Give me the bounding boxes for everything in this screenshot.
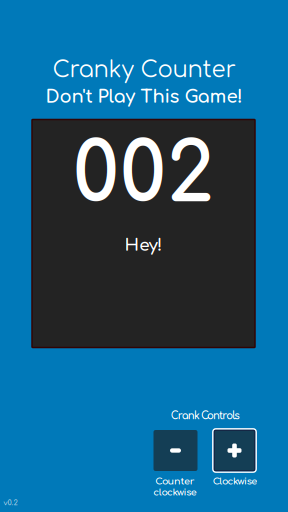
staticText: Don't Play This Game! (45, 87, 242, 107)
staticText: Clockwise (213, 476, 257, 487)
staticText: v0.2 (3, 499, 17, 507)
staticText: 002 (72, 129, 214, 220)
staticText: clockwise (153, 487, 197, 498)
button[interactable]: Clockwise (213, 429, 256, 472)
staticText: Crank Controls (171, 410, 240, 422)
staticText: Cranky Counter (52, 57, 235, 83)
staticText: Counter (155, 476, 195, 487)
staticText: Hey! (125, 236, 162, 255)
button[interactable]: Counter clockwise (153, 430, 197, 471)
